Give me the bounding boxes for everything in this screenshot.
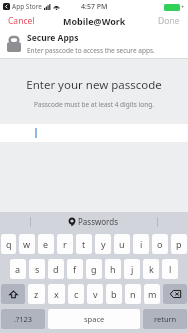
staticText: + — [181, 3, 185, 11]
staticText: d — [53, 263, 59, 275]
staticText: n — [130, 288, 136, 300]
staticText: i — [140, 238, 143, 250]
button[interactable]: m — [144, 284, 160, 304]
staticText: w — [23, 238, 31, 250]
staticText: t — [82, 238, 86, 250]
staticText: z — [34, 288, 39, 300]
staticText: p — [176, 238, 182, 250]
staticText: s — [35, 263, 40, 275]
button[interactable]: e — [38, 234, 54, 254]
button[interactable]: b — [106, 284, 122, 304]
button[interactable]: o — [152, 234, 168, 254]
button[interactable]: p — [171, 234, 187, 254]
staticText: 4:57 PM — [81, 2, 108, 12]
staticText: l — [169, 263, 172, 275]
staticText: c — [74, 288, 79, 300]
button[interactable]: z — [28, 284, 45, 304]
button[interactable]: k — [143, 259, 159, 279]
staticText: x — [54, 288, 59, 300]
button[interactable]: Done — [150, 13, 188, 28]
button[interactable]: s — [29, 259, 45, 279]
button[interactable]: Cancel — [0, 13, 43, 28]
button[interactable]: y — [95, 234, 111, 254]
staticText: .?123 — [14, 314, 33, 324]
button[interactable]: n — [125, 284, 141, 304]
button[interactable]: v — [87, 284, 103, 304]
button[interactable]: Passwords — [31, 212, 157, 231]
staticText: Passcode must be at least 4 digits long. — [34, 100, 154, 109]
button[interactable]: return — [143, 309, 187, 329]
button[interactable]: a — [10, 259, 26, 279]
staticText: e — [43, 238, 49, 250]
staticText: o — [157, 238, 163, 250]
staticText: k — [149, 263, 154, 275]
staticText: u — [119, 238, 125, 250]
staticText: Mobile@Work — [63, 15, 126, 27]
button[interactable]: x — [48, 284, 65, 304]
staticText: Secure Apps — [27, 32, 79, 44]
staticText: Cancel — [8, 15, 35, 26]
staticText: h — [110, 263, 116, 275]
button[interactable]: i — [133, 234, 149, 254]
button[interactable]: r — [57, 234, 73, 254]
staticText: v — [93, 288, 98, 300]
button[interactable]: Secure apps lock — [0, 28, 188, 58]
button[interactable]: Shift — [1, 284, 25, 304]
button[interactable]: d — [48, 259, 64, 279]
staticText: q — [6, 238, 12, 250]
staticText: f — [73, 263, 77, 275]
button[interactable]: .?123 — [1, 309, 45, 329]
button[interactable]: q — [1, 234, 16, 254]
staticText: j — [131, 263, 134, 275]
staticText: Enter passcode to access the secure apps… — [27, 46, 155, 55]
staticText: r — [63, 238, 67, 250]
button[interactable]: w — [19, 234, 35, 254]
button[interactable]: Backspace — [163, 284, 187, 304]
staticText: App Store — [12, 2, 42, 11]
button[interactable]: g — [86, 259, 102, 279]
staticText: a — [15, 263, 21, 275]
staticText: y — [101, 238, 106, 250]
button[interactable]: space — [48, 309, 140, 329]
button[interactable]: u — [114, 234, 130, 254]
button[interactable]: h — [105, 259, 121, 279]
button[interactable] — [0, 124, 188, 142]
staticText: m — [148, 288, 157, 300]
button[interactable]: c — [68, 284, 84, 304]
staticText: Passwords — [78, 216, 119, 227]
button[interactable]: j — [124, 259, 140, 279]
staticText: g — [91, 263, 97, 275]
staticText: return — [154, 314, 177, 324]
button[interactable]: f — [67, 259, 83, 279]
staticText: Done — [158, 15, 180, 26]
staticText: space — [84, 314, 105, 324]
staticText: b — [111, 288, 117, 300]
button[interactable]: t — [76, 234, 92, 254]
other: Secure apps lock — [7, 35, 21, 52]
staticText: Enter your new passcode — [26, 77, 162, 93]
button[interactable]: l — [162, 259, 178, 279]
